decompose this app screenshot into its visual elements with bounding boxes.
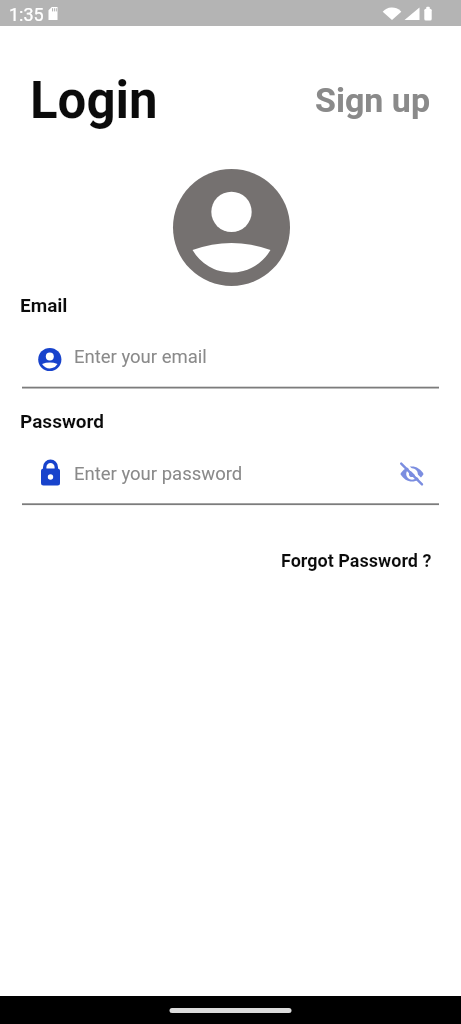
button[interactable]: Sign up [315,80,431,120]
button[interactable]: Enter your email [22,340,439,389]
staticText: Enter your password [74,463,243,485]
staticText: Login [30,71,158,131]
staticText: Email [20,294,68,316]
button[interactable]: Forgot Password ? [281,550,432,571]
staticText: Enter your email [74,346,207,368]
staticText: 1:35 [9,4,44,25]
button[interactable] [394,456,430,493]
button[interactable]: Enter your password [22,456,439,506]
staticText: Password [20,410,105,432]
